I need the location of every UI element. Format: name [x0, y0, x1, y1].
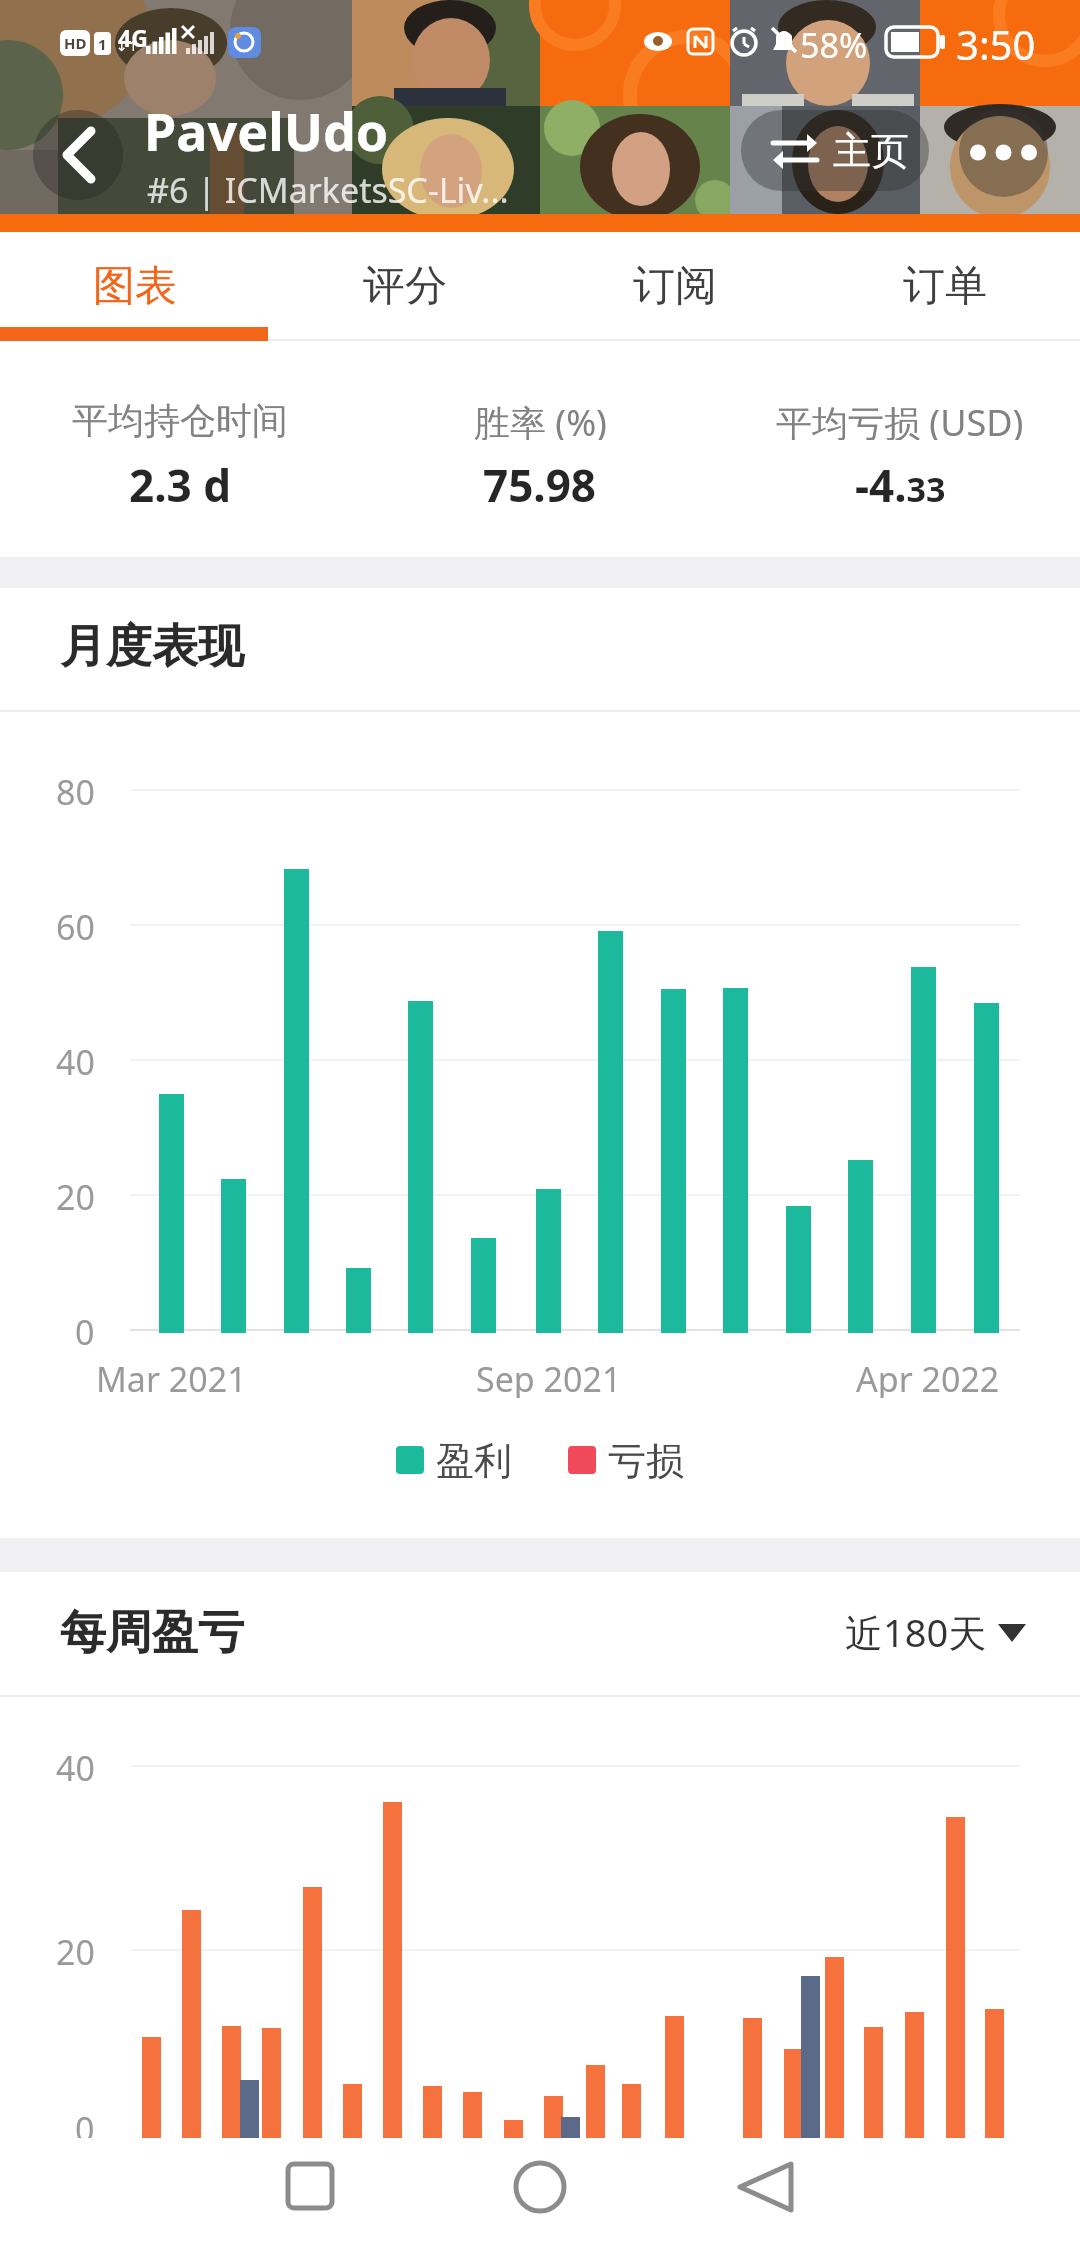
button[interactable]: 评分 — [270, 232, 540, 341]
staticText: 80 — [56, 769, 95, 811]
staticText: 月度表现 — [60, 618, 244, 676]
staticText: 0 — [75, 1309, 95, 1351]
staticText: HD — [64, 33, 87, 53]
staticText: Apr 2022 — [856, 1356, 1000, 1398]
staticText: 盈利 — [436, 1437, 512, 1485]
staticText: 20 — [56, 1174, 95, 1216]
staticText: 1 — [98, 34, 107, 54]
button[interactable] — [500, 2146, 580, 2226]
staticText: 60 — [56, 904, 95, 946]
staticText: -4.33 — [855, 455, 946, 515]
button[interactable]: 订阅 — [540, 232, 810, 341]
staticText: 亏损 — [608, 1437, 684, 1485]
staticText: 40 — [56, 1039, 95, 1081]
button[interactable]: 主页 — [741, 110, 929, 191]
staticText: PavelUdo — [144, 95, 389, 166]
staticText: Sep 2021 — [476, 1356, 622, 1398]
button[interactable] — [270, 2146, 350, 2226]
staticText: ↓↑ — [116, 38, 140, 54]
staticText: 胜率 (%) — [474, 398, 607, 440]
staticText: 0 — [75, 2106, 95, 2148]
staticText: 40 — [56, 1745, 95, 1787]
staticText: 近180天 — [845, 1606, 987, 1658]
button[interactable] — [33, 110, 123, 200]
staticText: 75.98 — [483, 455, 597, 515]
staticText: 图表 — [93, 260, 177, 313]
button[interactable]: 订单 — [810, 232, 1080, 341]
button[interactable] — [725, 2146, 805, 2226]
button[interactable]: 近180天 — [830, 1598, 1040, 1658]
staticText: 2.3 d — [129, 455, 231, 515]
staticText: 主页 — [833, 127, 909, 175]
staticText: #6 | ICMarketsSC-Liv... — [147, 167, 509, 213]
staticText: 评分 — [363, 260, 447, 313]
button[interactable] — [959, 108, 1048, 197]
button[interactable]: 图表 — [0, 232, 270, 341]
staticText: 平均亏损 (USD) — [776, 398, 1024, 440]
staticText: 4G — [118, 22, 148, 53]
staticText: 58% — [800, 22, 868, 68]
staticText: 每周盈亏 — [60, 1604, 244, 1662]
staticText: 20 — [56, 1929, 95, 1971]
staticText: 平均持仓时间 — [72, 398, 288, 440]
staticText: 3:50 — [956, 17, 1036, 71]
staticText: 订单 — [903, 260, 987, 313]
staticText: 订阅 — [633, 260, 717, 313]
staticText: Mar 2021 — [96, 1356, 247, 1398]
